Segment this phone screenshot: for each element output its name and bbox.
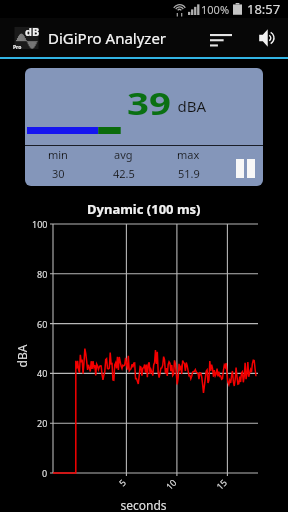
button[interactable]: Volume — [249, 19, 287, 57]
staticText: 18:57 — [247, 0, 281, 18]
staticText: max — [177, 147, 200, 162]
staticText: DiGiPro Analyzer — [48, 28, 167, 48]
staticText: min — [48, 147, 68, 162]
button[interactable]: Measurement list — [192, 19, 249, 57]
staticText: 30 — [52, 166, 65, 181]
staticText: 100% — [201, 2, 230, 17]
staticText: avg — [114, 147, 133, 162]
button[interactable]: Pause — [221, 146, 263, 186]
staticText: 42.5 — [113, 166, 135, 181]
staticText: 51.9 — [178, 166, 200, 181]
